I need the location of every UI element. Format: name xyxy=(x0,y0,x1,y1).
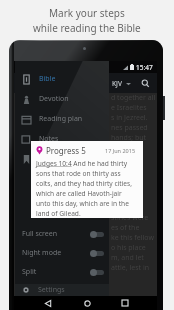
staticText: stines were xyxy=(111,213,149,223)
staticText: Bookmarks xyxy=(39,154,77,164)
staticText: while reading the Bible xyxy=(33,21,141,35)
staticText: Judges 10:4 And he had thirty sons that … xyxy=(36,159,136,218)
staticText: 15:47 xyxy=(136,63,153,72)
button[interactable]: Settings xyxy=(15,284,109,296)
staticText: attle, lest in xyxy=(111,263,150,273)
staticText: Progress 5 xyxy=(46,145,86,156)
staticText: 17 Jun 2015 xyxy=(105,147,136,154)
staticText: Settings xyxy=(38,285,65,295)
staticText: KJV xyxy=(112,79,122,88)
button[interactable]: Search xyxy=(138,76,152,90)
staticText: o his place xyxy=(111,243,146,253)
staticText: m, and let xyxy=(111,253,144,263)
button[interactable]: KJV xyxy=(110,77,133,90)
button[interactable]: Notes xyxy=(15,129,109,149)
staticText: Notes xyxy=(39,134,59,144)
staticText: Mark your steps xyxy=(49,6,125,20)
staticText: ke this fellow xyxy=(111,233,154,243)
staticText: Night mode xyxy=(22,248,62,258)
button[interactable]: Recent apps xyxy=(111,296,139,310)
button[interactable]: Split xyxy=(15,263,109,281)
staticText: nes passed xyxy=(111,123,148,133)
button[interactable]: Night mode xyxy=(15,244,109,262)
staticText: s in Jezreel. xyxy=(111,113,148,123)
button[interactable]: Bible xyxy=(15,69,109,89)
staticText: Split xyxy=(22,267,37,277)
staticText: Reading plan xyxy=(39,114,83,124)
button[interactable]: Back xyxy=(34,296,62,310)
button[interactable]: Bookmarks xyxy=(15,149,109,169)
staticText: Full screen xyxy=(22,229,58,239)
button[interactable]: Home xyxy=(73,296,101,310)
button[interactable]: Devotion xyxy=(15,89,109,109)
button[interactable]: Reading plan xyxy=(15,109,109,129)
button[interactable]: Full screen xyxy=(15,225,109,243)
staticText: e Israelites xyxy=(111,103,147,113)
staticText: hands; but xyxy=(111,133,147,143)
staticText: es of the xyxy=(111,223,140,233)
staticText: Bible xyxy=(39,74,56,84)
staticText: d together all xyxy=(111,93,156,103)
staticText: Devotion xyxy=(39,94,69,104)
